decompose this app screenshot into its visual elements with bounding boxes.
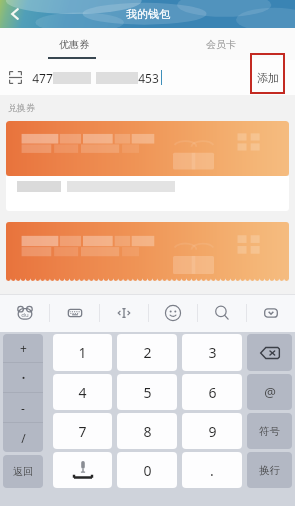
staticText: 453: [138, 70, 159, 86]
button[interactable]: 6: [182, 374, 242, 410]
button[interactable]: 返回: [3, 455, 43, 488]
staticText: 0: [143, 461, 152, 480]
staticText: du: [21, 311, 29, 319]
button[interactable]: [6, 121, 289, 211]
button[interactable]: Keyboard: [50, 294, 99, 332]
button[interactable]: 添加: [250, 53, 285, 94]
staticText: @: [264, 383, 276, 401]
staticText: 477: [32, 70, 53, 86]
button[interactable]: Scan code: [9, 71, 22, 84]
button[interactable]: +: [3, 334, 43, 362]
button[interactable]: 8: [117, 413, 177, 449]
button[interactable]: @: [247, 374, 292, 410]
staticText: 9: [208, 422, 217, 441]
staticText: 7: [78, 422, 87, 441]
button[interactable]: Back: [5, 4, 25, 24]
staticText: 符号: [259, 425, 280, 438]
button[interactable]: 优惠券: [0, 28, 147, 60]
button[interactable]: ·: [3, 363, 43, 392]
button[interactable]: 符号: [247, 413, 292, 449]
button[interactable]: 2: [117, 334, 177, 371]
button[interactable]: 5: [117, 374, 177, 410]
staticText: 8: [143, 422, 152, 441]
staticText: 优惠券: [59, 38, 89, 51]
button[interactable]: Voice input: [53, 452, 112, 488]
staticText: 会员卡: [206, 38, 236, 51]
staticText: 4: [78, 383, 87, 402]
button[interactable]: Hide keyboard: [247, 294, 295, 332]
staticText: 兑换券: [8, 102, 35, 113]
button[interactable]: 0: [117, 452, 177, 488]
button[interactable]: 4: [53, 374, 112, 410]
staticText: .: [210, 461, 214, 480]
button[interactable]: 换行: [247, 452, 292, 488]
button[interactable]: 3: [182, 334, 242, 371]
staticText: +: [20, 340, 27, 356]
button[interactable]: Search: [198, 294, 246, 332]
button[interactable]: 1: [53, 334, 112, 371]
staticText: /: [21, 430, 26, 446]
staticText: 添加: [257, 71, 279, 85]
button[interactable]: [6, 222, 289, 281]
staticText: 5: [143, 383, 152, 402]
staticText: 2: [143, 343, 152, 362]
button[interactable]: Delete: [247, 334, 292, 371]
staticText: ·: [21, 366, 26, 389]
button[interactable]: Emoji: [149, 294, 197, 332]
button[interactable]: 会员卡: [147, 28, 295, 60]
button[interactable]: 9: [182, 413, 242, 449]
staticText: 我的钱包: [126, 7, 170, 21]
staticText: -: [21, 400, 25, 416]
button[interactable]: Input method: [0, 294, 49, 332]
staticText: 6: [208, 383, 217, 402]
button[interactable]: Cursor: [100, 294, 148, 332]
button[interactable]: .: [182, 452, 242, 488]
button[interactable]: /: [3, 423, 43, 452]
staticText: 返回: [13, 465, 33, 478]
staticText: 1: [78, 343, 87, 362]
button[interactable]: -: [3, 393, 43, 422]
staticText: 换行: [259, 464, 280, 477]
button[interactable]: 7: [53, 413, 112, 449]
staticText: 3: [208, 343, 217, 362]
